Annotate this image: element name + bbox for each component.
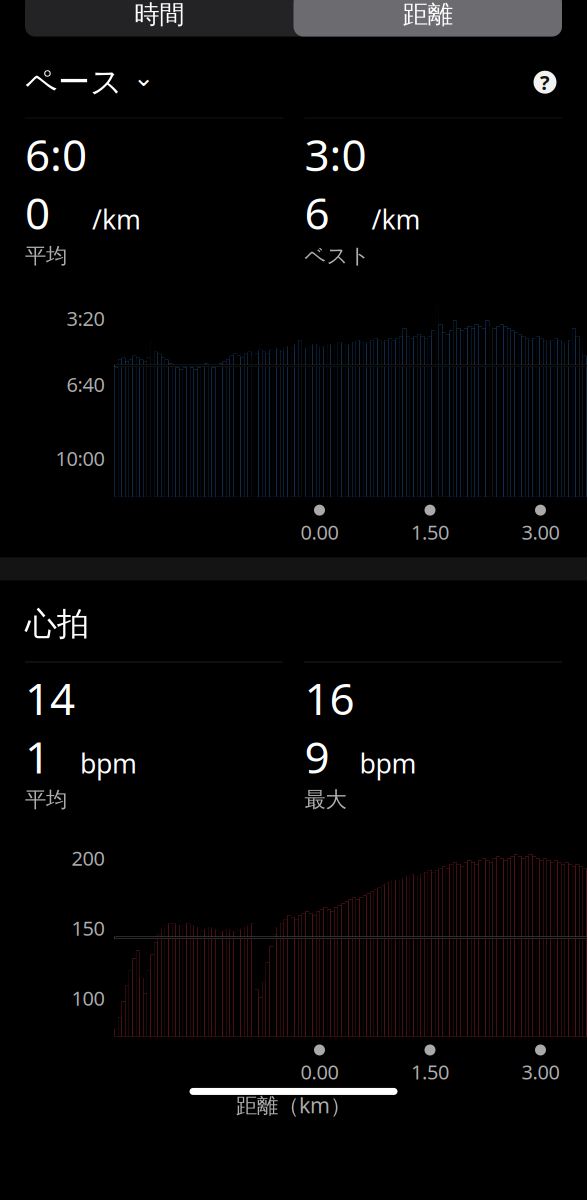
- staticText: 1.50: [411, 519, 449, 545]
- staticText: 3:06: [304, 125, 366, 242]
- staticText: 10:00: [55, 445, 104, 471]
- staticText: 1.50: [411, 1058, 449, 1085]
- staticText: /km: [371, 201, 420, 237]
- button[interactable]: Help: [528, 65, 562, 99]
- staticText: 100: [71, 985, 104, 1011]
- staticText: 0.00: [300, 519, 338, 545]
- staticText: 距離: [403, 0, 453, 30]
- staticText: 3.00: [521, 1058, 559, 1085]
- staticText: 時間: [134, 0, 184, 30]
- staticText: ペース: [25, 63, 123, 102]
- staticText: 3.00: [521, 519, 559, 545]
- staticText: 距離（km）: [236, 553, 351, 581]
- button[interactable]: 距離: [293, 0, 562, 37]
- staticText: 0.00: [300, 1058, 338, 1085]
- staticText: bpm: [80, 745, 137, 781]
- staticText: 平均: [25, 243, 67, 269]
- staticText: 200: [71, 845, 104, 871]
- staticText: ?: [540, 69, 550, 95]
- staticText: 平均: [25, 787, 67, 813]
- staticText: 3:20: [66, 305, 104, 331]
- staticText: 6:00: [25, 125, 87, 242]
- staticText: /km: [92, 201, 141, 237]
- staticText: 150: [71, 915, 104, 941]
- staticText: ベスト: [304, 243, 370, 269]
- staticText: 最大: [304, 787, 346, 813]
- staticText: 6:40: [66, 371, 104, 397]
- staticText: bpm: [359, 745, 416, 781]
- staticText: ⌄: [133, 63, 154, 92]
- button[interactable]: 時間: [25, 0, 293, 37]
- staticText: 距離（km）: [236, 1091, 351, 1119]
- button[interactable]: ペース: [25, 63, 154, 102]
- staticText: 心拍: [25, 604, 89, 644]
- staticText: 169: [304, 669, 354, 786]
- staticText: 141: [25, 669, 75, 786]
